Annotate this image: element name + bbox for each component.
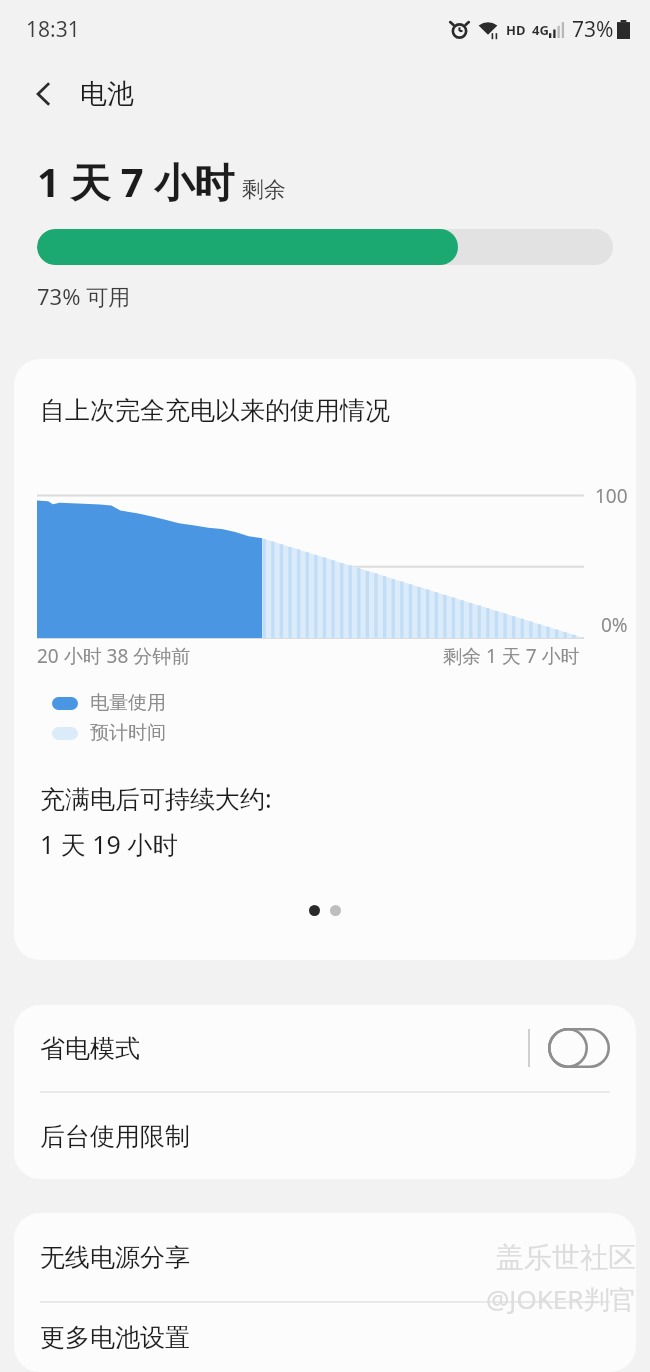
button[interactable]: 无线电源分享 — [14, 1213, 636, 1301]
staticText: 4G — [532, 21, 549, 39]
staticText: HD — [506, 21, 526, 39]
button[interactable]: 后台使用限制 — [14, 1093, 636, 1179]
staticText: 电池 — [80, 77, 134, 111]
button[interactable]: 自上次完全充电以来的使用情况 — [14, 359, 636, 960]
staticText: 剩余 1 天 7 小时 — [443, 643, 580, 669]
button[interactable]: Power saving toggle — [548, 1028, 610, 1068]
staticText: 100 — [595, 483, 628, 509]
staticText: 剩余 — [242, 176, 286, 204]
staticText: 无线电源分享 — [40, 1242, 190, 1273]
staticText: 更多电池设置 — [40, 1322, 190, 1353]
staticText: 省电模式 — [40, 1033, 140, 1064]
button[interactable]: Back — [16, 66, 72, 122]
staticText: 盖乐世社区 — [496, 1240, 636, 1275]
staticText: 20 小时 38 分钟前 — [37, 643, 191, 669]
staticText: 1 天 19 小时 — [40, 827, 178, 861]
staticText: 73% 可用 — [37, 281, 131, 311]
button[interactable]: 省电模式 — [14, 1005, 636, 1091]
staticText: 自上次完全充电以来的使用情况 — [40, 395, 390, 426]
staticText: 1 天 7 小时 — [37, 154, 234, 209]
staticText: 18:31 — [26, 15, 80, 44]
staticText: 73% — [572, 15, 614, 44]
staticText: 0% — [601, 612, 628, 638]
staticText: @JOKER判官 — [486, 1281, 636, 1317]
staticText: 预计时间 — [90, 721, 166, 745]
staticText: 后台使用限制 — [40, 1121, 190, 1152]
staticText: 电量使用 — [90, 691, 166, 715]
staticText: 充满电后可持续大约: — [40, 781, 272, 815]
button[interactable]: 更多电池设置 — [14, 1303, 636, 1372]
